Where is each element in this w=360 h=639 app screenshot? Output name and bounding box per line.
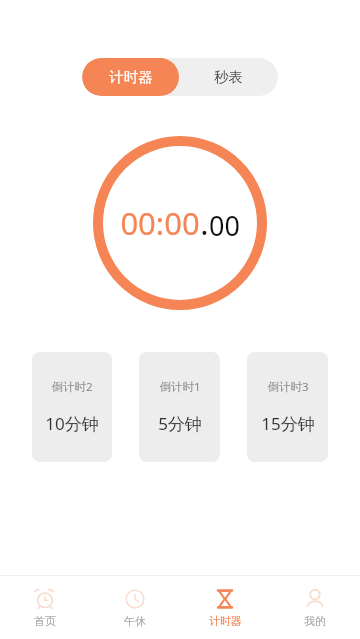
other: Timer bbox=[214, 588, 236, 610]
button[interactable]: Timer bbox=[180, 576, 270, 639]
staticText: 倒计时2 bbox=[51, 379, 93, 395]
staticText: 倒计时1 bbox=[159, 379, 201, 395]
button[interactable]: 秒表 bbox=[179, 58, 278, 96]
staticText: 计时器 bbox=[209, 614, 242, 628]
staticText: 午休 bbox=[124, 614, 146, 628]
button[interactable]: Nap bbox=[90, 576, 180, 639]
other: Nap bbox=[124, 588, 146, 610]
staticText: 首页 bbox=[34, 614, 56, 628]
button[interactable]: 计时器 bbox=[82, 58, 179, 96]
staticText: 倒计时3 bbox=[267, 379, 309, 395]
other: Home bbox=[34, 588, 56, 610]
staticText: 我的 bbox=[304, 614, 326, 628]
button[interactable]: Start timer bbox=[93, 136, 267, 310]
staticText: 00:00 bbox=[120, 202, 200, 244]
staticText: 00 bbox=[209, 207, 240, 244]
button[interactable]: 倒计时2 bbox=[32, 352, 112, 462]
button[interactable]: 倒计时3 bbox=[247, 352, 328, 462]
button[interactable]: 倒计时1 bbox=[139, 352, 220, 462]
staticText: 计时器 bbox=[109, 68, 153, 86]
staticText: 秒表 bbox=[214, 68, 243, 86]
staticText: 10分钟 bbox=[45, 412, 99, 435]
button[interactable]: Profile bbox=[270, 576, 360, 639]
staticText: 5分钟 bbox=[158, 412, 202, 435]
staticText: . bbox=[200, 202, 209, 244]
button[interactable]: Home bbox=[0, 576, 90, 639]
other: Profile bbox=[304, 588, 326, 610]
staticText: 15分钟 bbox=[261, 412, 315, 435]
